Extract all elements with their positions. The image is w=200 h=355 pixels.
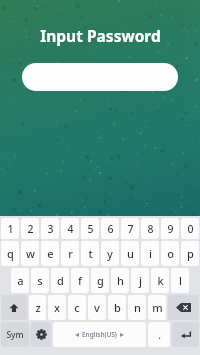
staticText: 7 <box>127 222 134 236</box>
staticText: y <box>107 246 113 261</box>
staticText: w <box>26 246 35 261</box>
button[interactable]: a <box>11 268 29 293</box>
button[interactable]: t <box>81 241 99 266</box>
staticText: a <box>17 273 24 288</box>
button[interactable]: w <box>21 241 39 266</box>
button[interactable]: 2 <box>21 218 39 239</box>
staticText: 0 <box>187 222 194 236</box>
staticText: v <box>94 300 100 315</box>
staticText: t <box>88 246 93 261</box>
button[interactable]: 5 <box>81 218 99 239</box>
staticText: r <box>68 246 73 261</box>
button[interactable]: y <box>101 241 119 266</box>
button[interactable]: Keyboard settings <box>31 322 51 347</box>
button[interactable]: 0 <box>181 218 199 239</box>
staticText: e <box>47 246 54 261</box>
button[interactable]: q <box>1 241 19 266</box>
button[interactable]: u <box>121 241 139 266</box>
staticText: 6 <box>107 222 114 236</box>
button[interactable]: 6 <box>101 218 119 239</box>
button[interactable]: g <box>91 268 109 293</box>
staticText: 4 <box>67 222 74 236</box>
button[interactable]: j <box>131 268 149 293</box>
button[interactable]: p <box>181 241 199 266</box>
button[interactable]: v <box>88 295 106 320</box>
staticText: g <box>97 273 104 288</box>
staticText: z <box>35 300 41 315</box>
staticText: k <box>157 273 164 288</box>
button[interactable]: 3 <box>41 218 59 239</box>
staticText: c <box>74 300 80 315</box>
button[interactable]: o <box>161 241 179 266</box>
staticText: 3 <box>47 222 54 236</box>
staticText: u <box>127 246 134 261</box>
staticText: 2 <box>27 222 34 236</box>
button[interactable]: 8 <box>141 218 159 239</box>
button[interactable]: n <box>128 295 146 320</box>
staticText: b <box>114 300 121 315</box>
staticText: m <box>152 300 163 315</box>
button[interactable]: 7 <box>121 218 139 239</box>
button[interactable]: k <box>151 268 169 293</box>
button[interactable]: x <box>48 295 66 320</box>
staticText: . <box>158 328 161 342</box>
button[interactable]: Enter <box>172 322 199 347</box>
staticText: q <box>7 246 14 261</box>
button[interactable]: . <box>148 322 170 347</box>
staticText: f <box>78 273 82 288</box>
staticText: p <box>187 246 194 261</box>
button[interactable]: f <box>71 268 89 293</box>
staticText: Input Password <box>40 25 161 46</box>
staticText: o <box>167 246 174 261</box>
button[interactable]: s <box>31 268 49 293</box>
button[interactable]: b <box>108 295 126 320</box>
staticText: English(US) <box>82 330 117 339</box>
staticText: l <box>179 273 182 288</box>
button[interactable]: d <box>51 268 69 293</box>
button[interactable] <box>22 63 178 91</box>
staticText: x <box>54 300 60 315</box>
button[interactable]: Shift <box>1 295 27 320</box>
button[interactable]: 9 <box>161 218 179 239</box>
staticText: 1 <box>7 222 14 236</box>
button[interactable]: h <box>111 268 129 293</box>
button[interactable]: i <box>141 241 159 266</box>
staticText: j <box>139 273 142 288</box>
button[interactable]: Sym <box>1 322 29 347</box>
button[interactable]: 4 <box>61 218 79 239</box>
staticText: 5 <box>87 222 94 236</box>
button[interactable]: e <box>41 241 59 266</box>
button[interactable]: r <box>61 241 79 266</box>
staticText: i <box>149 246 152 261</box>
staticText: Sym <box>6 329 24 341</box>
button[interactable]: l <box>171 268 189 293</box>
button[interactable]: z <box>29 295 46 320</box>
staticText: s <box>37 273 43 288</box>
button[interactable]: m <box>148 295 166 320</box>
staticText: 8 <box>147 222 154 236</box>
button[interactable]: 1 <box>1 218 19 239</box>
staticText: n <box>134 300 141 315</box>
staticText: h <box>117 273 124 288</box>
staticText: 9 <box>167 222 174 236</box>
button[interactable]: c <box>68 295 86 320</box>
button[interactable]: Space <box>53 322 146 347</box>
button[interactable]: Backspace <box>168 295 199 320</box>
staticText: d <box>57 273 64 288</box>
